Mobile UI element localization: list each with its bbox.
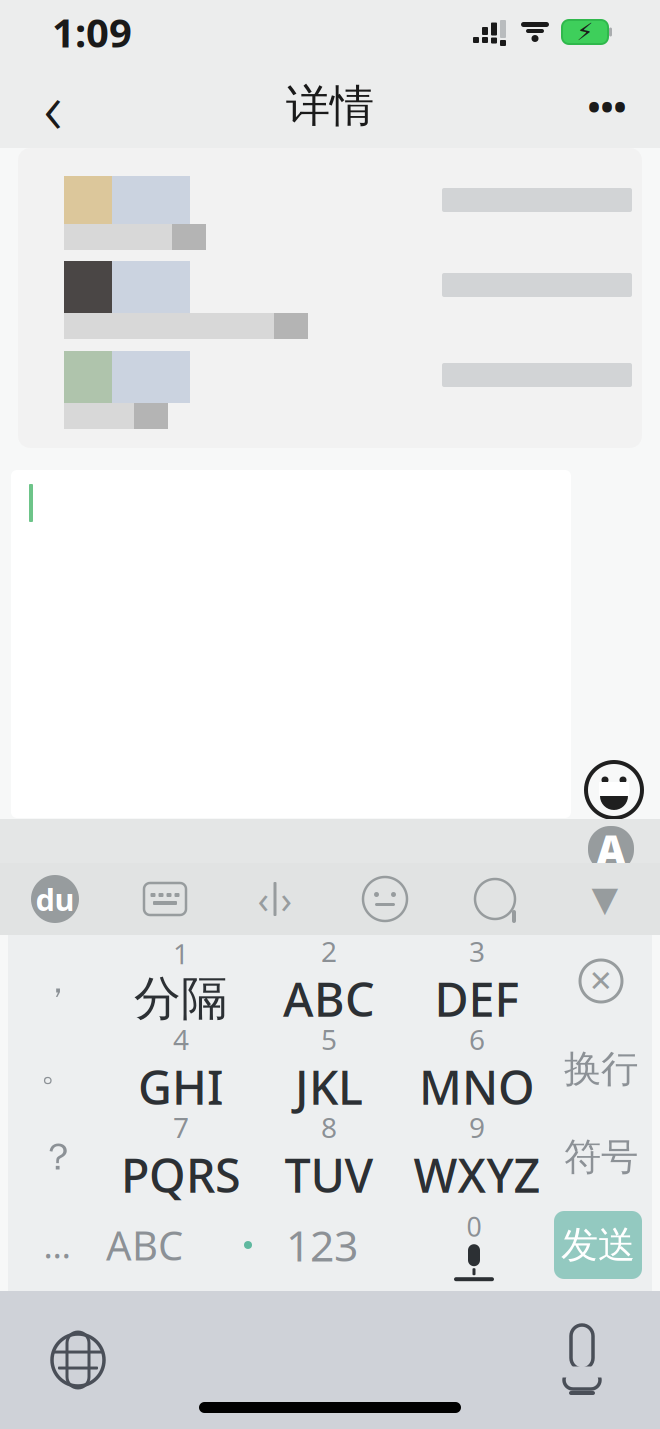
staticText: 分隔 [134, 970, 228, 1027]
staticText: 123 [286, 1217, 358, 1273]
staticText: ‹ [257, 874, 269, 924]
button[interactable]: Input method settings [0, 866, 110, 932]
staticText: 8 [321, 1108, 337, 1146]
button[interactable]: Emoji [571, 470, 657, 818]
staticText: … [43, 1222, 70, 1268]
staticText: ••• [587, 83, 626, 129]
staticText: du [35, 879, 74, 919]
staticText: 4 [173, 1020, 189, 1058]
button[interactable]: Delete [551, 937, 651, 1025]
staticText: GHI [138, 1056, 224, 1118]
staticText: › [280, 874, 292, 924]
button[interactable]: Back [14, 66, 92, 146]
staticText: 。 [40, 1048, 75, 1090]
button[interactable]: Voice input [404, 1201, 544, 1289]
staticText: 3 [469, 932, 485, 970]
button[interactable]: Hide keyboard [550, 866, 660, 932]
button[interactable]: 发送 [544, 1201, 652, 1289]
staticText: 7 [173, 1108, 189, 1146]
button[interactable]: … [8, 1201, 106, 1289]
staticText: MNO [419, 1056, 535, 1118]
staticText: PQRS [121, 1144, 241, 1206]
staticText: TUV [284, 1144, 373, 1206]
button[interactable]: 9 [403, 1113, 551, 1201]
staticText: 详情 [286, 79, 374, 133]
staticText: A [596, 822, 625, 875]
staticText: 发送 [561, 1222, 635, 1268]
button[interactable]: 8 [255, 1113, 403, 1201]
button[interactable]: Move cursor [220, 866, 330, 932]
staticText: WXYZ [413, 1144, 540, 1206]
button[interactable]: Dictation [512, 1310, 652, 1410]
staticText: 换行 [564, 1046, 638, 1092]
staticText: JKL [295, 1056, 363, 1118]
staticText: 0 [466, 1209, 481, 1244]
staticText: ⚡︎ [576, 18, 593, 46]
staticText: ， [40, 960, 75, 1002]
button[interactable]: ？ [9, 1113, 107, 1201]
staticText: 1:09 [52, 5, 132, 58]
staticText: 2 [321, 932, 337, 970]
button[interactable]: Numbers [198, 1201, 404, 1289]
staticText: ‹ [43, 58, 62, 154]
button[interactable]: 3 [403, 937, 551, 1025]
button[interactable]: Search [440, 866, 550, 932]
staticText: 符号 [564, 1134, 638, 1180]
button[interactable]: 4 [107, 1025, 255, 1113]
staticText: ABC [106, 1218, 183, 1271]
staticText: DEF [434, 968, 519, 1030]
button[interactable]: 符号 [551, 1113, 651, 1201]
staticText: 1 [173, 935, 189, 972]
button[interactable]: Switch language [8, 1310, 148, 1410]
button[interactable]: More options [568, 66, 646, 146]
staticText: ABC [283, 968, 375, 1030]
staticText: 6 [469, 1020, 485, 1058]
button[interactable]: ABC [106, 1201, 198, 1289]
staticText: 5 [321, 1020, 337, 1058]
button[interactable]: 2 [255, 937, 403, 1025]
staticText: ✕ [588, 964, 613, 998]
button[interactable]: 7 [107, 1113, 255, 1201]
button[interactable]: Keyboard layout [110, 866, 220, 932]
staticText: ▼ [591, 879, 618, 919]
button[interactable]: Emoticons [330, 866, 440, 932]
staticText: ？ [39, 1134, 76, 1180]
button[interactable]: ， [9, 937, 107, 1025]
button[interactable]: 1 [107, 937, 255, 1025]
button[interactable]: 5 [255, 1025, 403, 1113]
button[interactable]: 6 [403, 1025, 551, 1113]
staticText: 9 [469, 1108, 485, 1146]
button[interactable]: 。 [9, 1025, 107, 1113]
button[interactable]: 换行 [551, 1025, 651, 1113]
